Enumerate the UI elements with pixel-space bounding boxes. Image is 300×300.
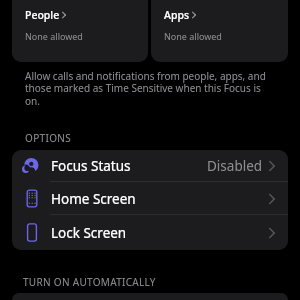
staticText: Home Screen bbox=[51, 190, 136, 208]
staticText: TURN ON AUTOMATICALLY bbox=[23, 275, 156, 289]
staticText: Lock Screen bbox=[51, 224, 127, 242]
button[interactable]: People bbox=[12, 0, 148, 62]
button[interactable]: Lock Screen bbox=[12, 215, 288, 250]
staticText: Disabled bbox=[207, 157, 263, 175]
staticText: Focus Status bbox=[51, 157, 131, 175]
staticText: None allowed bbox=[25, 30, 83, 42]
staticText: People bbox=[25, 8, 60, 22]
button[interactable]: Home Screen bbox=[12, 182, 288, 215]
staticText: None allowed bbox=[164, 30, 222, 42]
staticText: OPTIONS bbox=[25, 131, 72, 145]
button[interactable]: Apps bbox=[151, 0, 288, 62]
staticText: Apps bbox=[164, 8, 190, 22]
button[interactable]: Focus Status bbox=[12, 150, 288, 182]
staticText: Allow calls and notifications from peopl… bbox=[25, 69, 267, 108]
